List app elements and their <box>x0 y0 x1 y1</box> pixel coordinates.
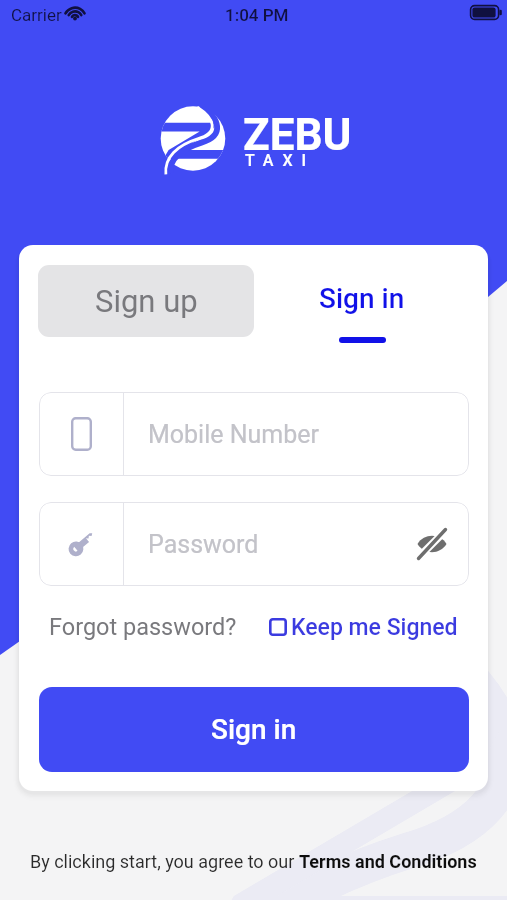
button[interactable]: Show password <box>395 502 469 586</box>
button[interactable]: Password <box>39 502 469 586</box>
staticText: Password <box>148 530 259 559</box>
button[interactable]: Sign up <box>38 265 254 337</box>
staticText: 1:04 PM <box>225 5 289 25</box>
button[interactable]: Sign in <box>39 687 469 772</box>
staticText: Carrier <box>11 5 62 25</box>
button[interactable]: Sign in <box>262 265 462 345</box>
button[interactable]: Mobile Number <box>39 392 469 476</box>
staticText: Forgot password? <box>49 613 237 641</box>
button[interactable]: Forgot password? <box>49 606 237 648</box>
staticText: Sign up <box>95 283 198 319</box>
staticText: Mobile Number <box>148 420 320 449</box>
button[interactable]: Terms and Conditions <box>299 851 477 872</box>
staticText: By clicking start, you agree to our <box>30 851 299 872</box>
button[interactable]: Keep me Signed <box>269 606 458 648</box>
staticText: Sign in <box>211 713 297 746</box>
staticText: Keep me Signed <box>291 614 458 641</box>
staticText: TAXI <box>245 151 316 170</box>
staticText: ZEBU <box>243 109 352 161</box>
staticText: Sign in <box>319 282 405 315</box>
